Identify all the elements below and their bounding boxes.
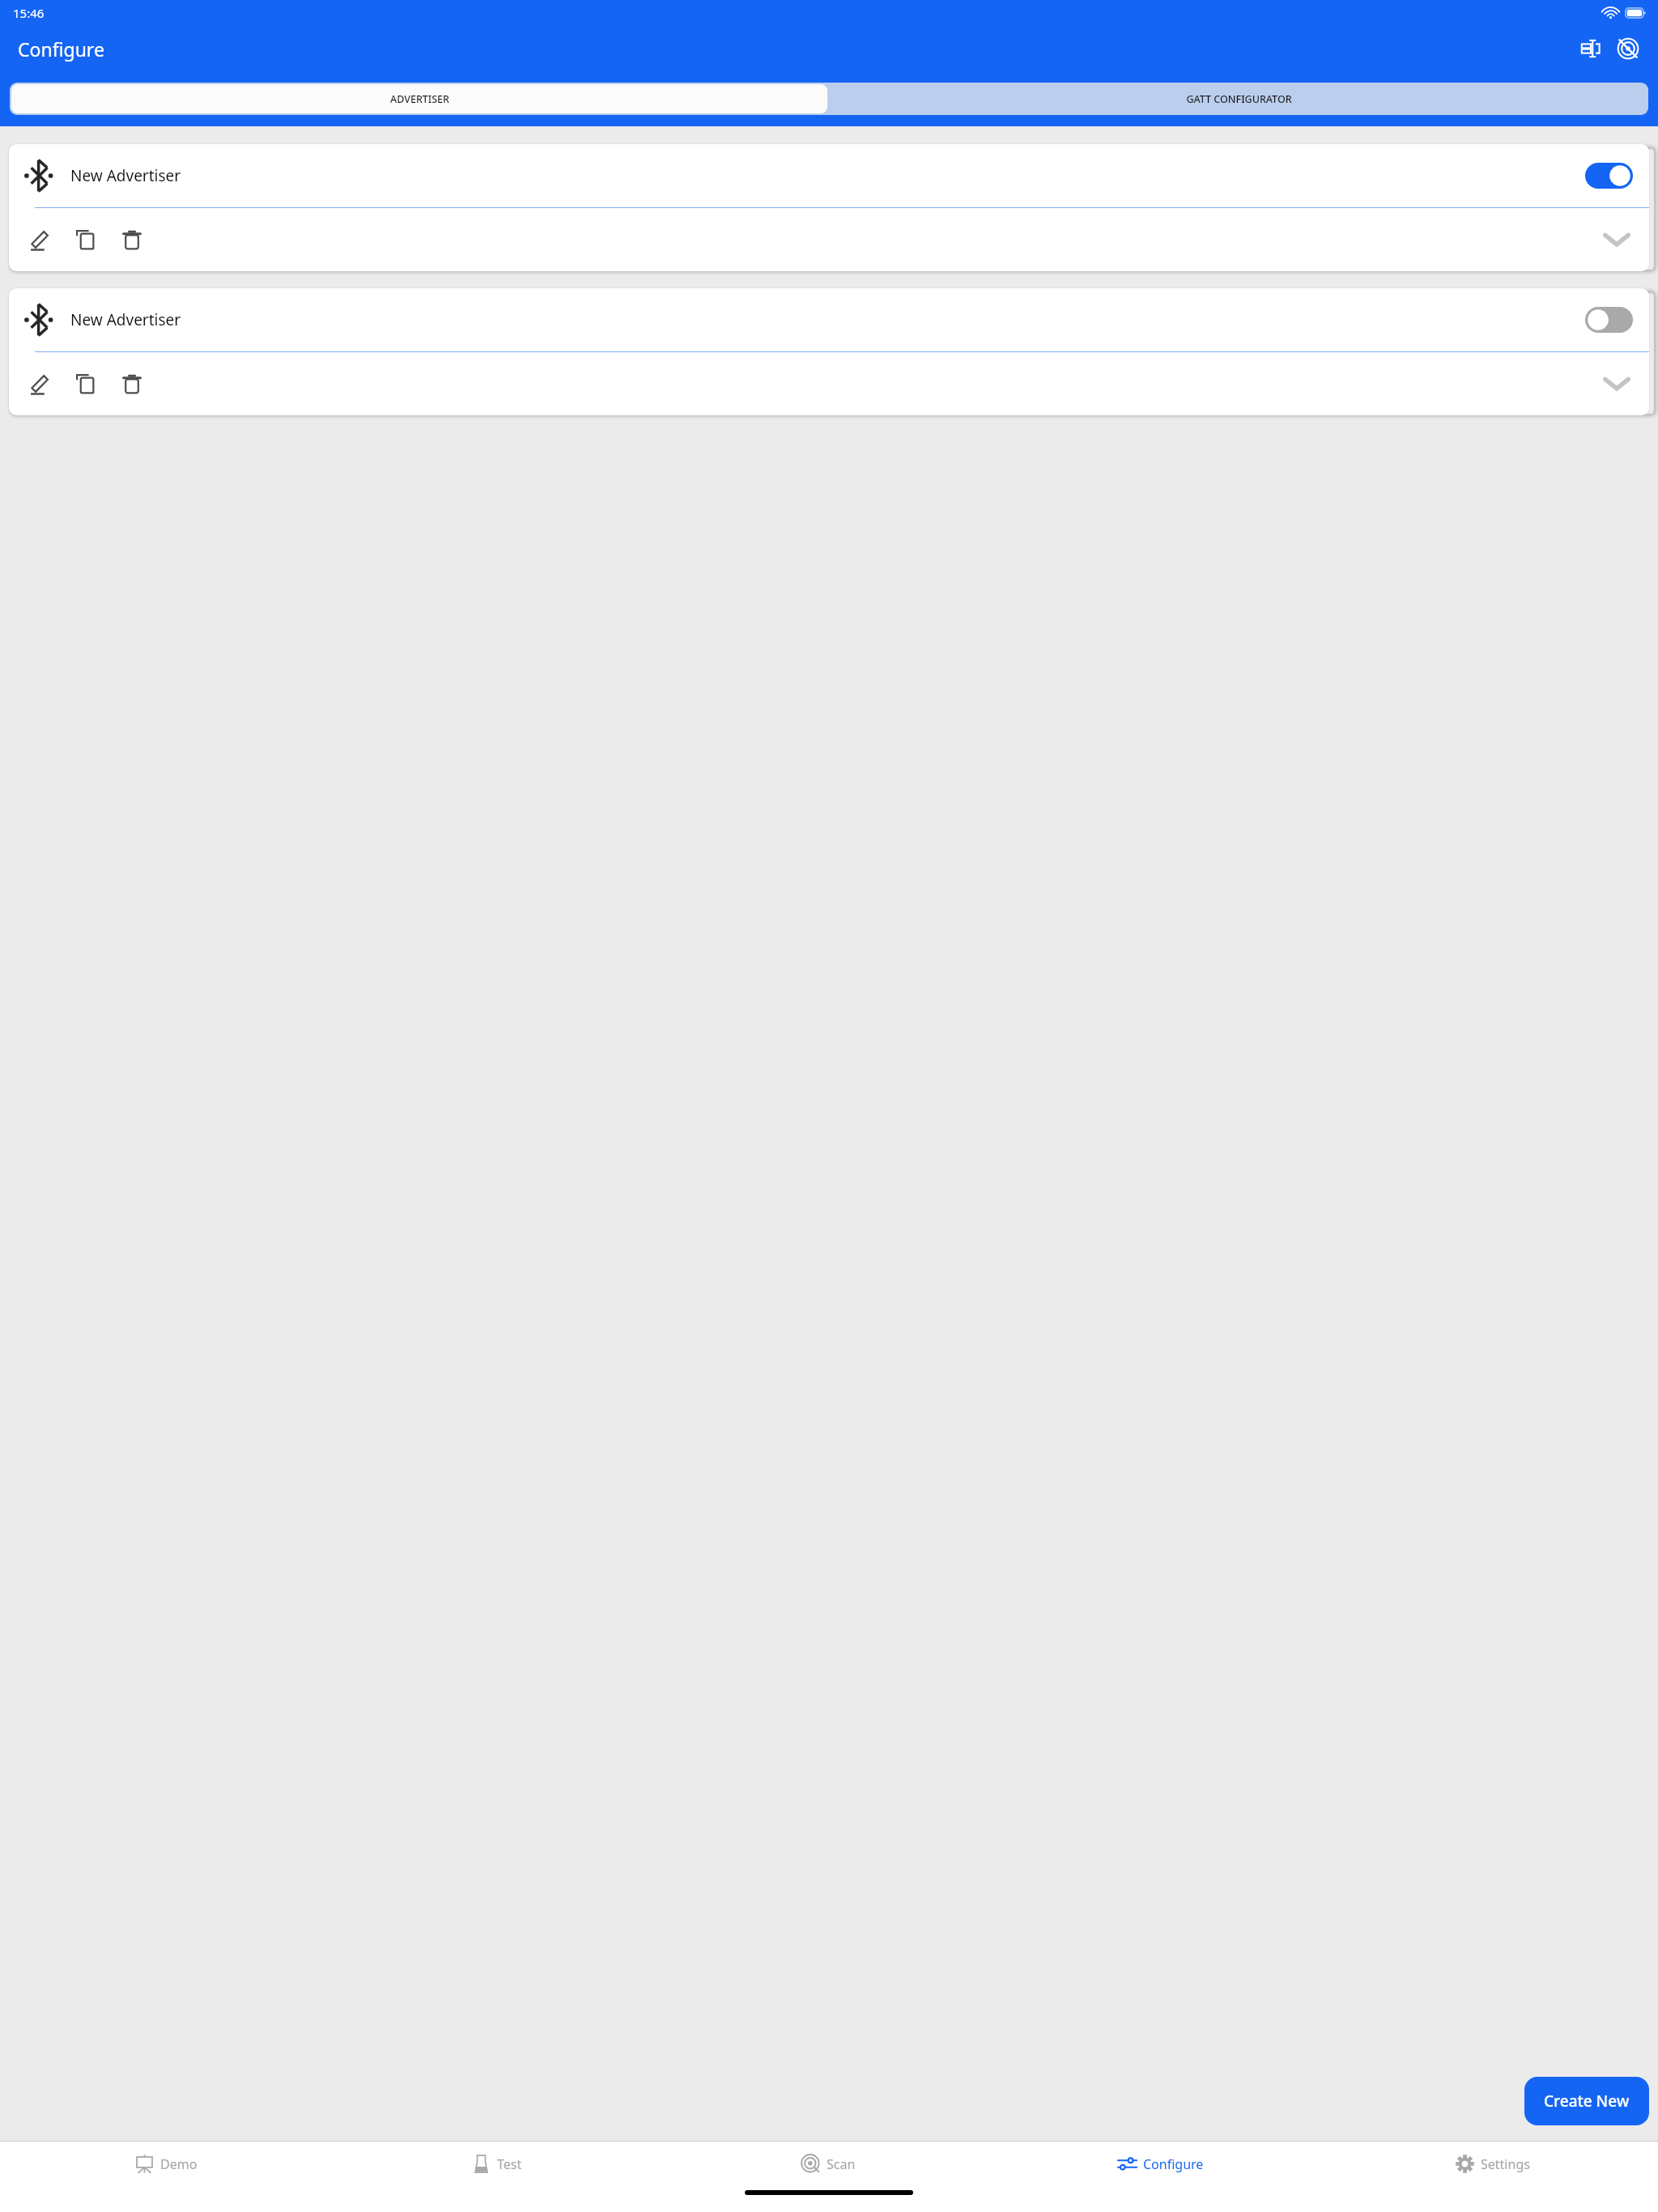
button[interactable]: Duplicate (66, 364, 105, 403)
staticText: 15:46 (13, 5, 45, 21)
button[interactable]: Enable advertiser (1579, 300, 1638, 340)
staticText: Test (497, 2155, 522, 2173)
staticText: GATT CONFIGURATOR (1186, 92, 1292, 106)
button[interactable]: Scan (662, 2142, 994, 2186)
button[interactable]: Duplicate (66, 220, 105, 259)
button[interactable]: Edit (20, 364, 59, 403)
button[interactable]: Scanning off (1609, 30, 1647, 67)
staticText: Demo (160, 2155, 198, 2173)
button[interactable]: Expand (1591, 358, 1643, 410)
staticText: Scan (827, 2155, 856, 2173)
button[interactable]: Advertiser range (1572, 30, 1609, 67)
button[interactable]: Create New (1524, 2077, 1649, 2125)
staticText: Create New (1544, 2091, 1630, 2112)
staticText: New Advertiser (70, 165, 181, 186)
staticText: Configure (1143, 2155, 1204, 2173)
button[interactable]: ADVERTISER (11, 84, 827, 113)
staticText: Settings (1481, 2155, 1530, 2173)
button[interactable]: Delete (113, 364, 151, 403)
staticText: New Advertiser (70, 309, 181, 330)
button[interactable]: Edit (20, 220, 59, 259)
button[interactable]: Test (331, 2142, 662, 2186)
button[interactable]: New Advertiser (9, 288, 1649, 415)
button[interactable]: Delete (113, 220, 151, 259)
button[interactable]: Expand (1591, 214, 1643, 266)
button[interactable]: Disable advertiser (1579, 155, 1638, 196)
button[interactable]: Configure (994, 2142, 1326, 2186)
button[interactable]: Settings (1326, 2142, 1658, 2186)
button[interactable]: New Advertiser (9, 144, 1649, 271)
button[interactable]: GATT CONFIGURATOR (829, 83, 1648, 115)
staticText: ADVERTISER (390, 92, 449, 106)
button[interactable]: Demo (0, 2142, 331, 2186)
staticText: Configure (18, 36, 104, 62)
